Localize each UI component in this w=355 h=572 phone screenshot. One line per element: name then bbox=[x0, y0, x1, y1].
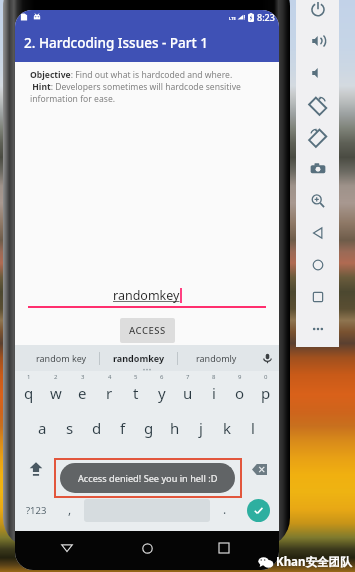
button[interactable]: 1 bbox=[15, 371, 42, 408]
staticText: f bbox=[120, 418, 126, 438]
button[interactable]: randomly bbox=[178, 345, 255, 371]
staticText: g bbox=[144, 418, 154, 438]
button[interactable]: Power bbox=[296, 0, 339, 24]
button[interactable]: 3 bbox=[69, 371, 96, 408]
staticText: t bbox=[133, 383, 139, 403]
staticText: 0 bbox=[264, 373, 268, 381]
button[interactable]: random key bbox=[23, 345, 99, 371]
button[interactable]: x bbox=[83, 448, 109, 490]
staticText: i bbox=[212, 383, 216, 403]
staticText: LTE bbox=[229, 16, 236, 21]
button[interactable]: Rotate left bbox=[296, 90, 339, 120]
button[interactable]: Enter bbox=[247, 499, 270, 522]
button[interactable]: v bbox=[135, 448, 161, 490]
button[interactable]: c bbox=[109, 448, 135, 490]
button[interactable]: Backspace bbox=[239, 448, 279, 490]
button[interactable]: Home bbox=[296, 250, 339, 280]
button[interactable]: a bbox=[29, 408, 56, 448]
staticText: j bbox=[199, 418, 203, 438]
staticText: Khan安全团队 bbox=[276, 554, 352, 570]
staticText: 3 bbox=[81, 373, 85, 381]
button[interactable]: randomkey bbox=[28, 284, 266, 306]
button[interactable]: randomkey bbox=[100, 345, 177, 371]
staticText: h bbox=[170, 418, 180, 438]
staticText: v bbox=[144, 459, 152, 479]
button[interactable]: Volume down bbox=[296, 58, 339, 88]
staticText: ACCESS bbox=[129, 324, 166, 337]
staticText: b bbox=[169, 459, 179, 479]
button[interactable]: Volume up bbox=[296, 26, 339, 56]
button[interactable]: ACCESS bbox=[120, 318, 175, 343]
staticText: Objective: Find out what is hardcoded an… bbox=[30, 69, 233, 81]
button[interactable]: f bbox=[110, 408, 136, 448]
button[interactable]: , bbox=[57, 490, 82, 531]
staticText: 8 bbox=[212, 373, 216, 381]
staticText: random key bbox=[36, 352, 87, 364]
button[interactable]: 9 bbox=[227, 371, 253, 408]
button[interactable]: d bbox=[83, 408, 110, 448]
button[interactable]: s bbox=[56, 408, 83, 448]
staticText: 2 bbox=[54, 373, 58, 381]
button[interactable]: More bbox=[296, 314, 339, 344]
button[interactable]: Back bbox=[296, 218, 339, 248]
button[interactable]: Home bbox=[132, 531, 162, 565]
staticText: 8:23 bbox=[257, 11, 275, 23]
staticText: e bbox=[78, 383, 87, 403]
button[interactable]: 7 bbox=[175, 371, 201, 408]
button[interactable]: 5 bbox=[123, 371, 149, 408]
staticText: o bbox=[235, 383, 245, 403]
staticText: a bbox=[38, 418, 47, 438]
button[interactable]: Overview bbox=[296, 282, 339, 312]
staticText: 5 bbox=[134, 373, 138, 381]
button[interactable]: m bbox=[213, 448, 239, 490]
staticText: 7 bbox=[186, 373, 190, 381]
button[interactable]: 6 bbox=[149, 371, 175, 408]
button[interactable]: 2 bbox=[42, 371, 69, 408]
button[interactable]: ?123 bbox=[15, 490, 57, 531]
staticText: Access denied! See you in hell :D bbox=[78, 472, 218, 485]
button[interactable]: g bbox=[136, 408, 162, 448]
staticText: l bbox=[251, 418, 255, 438]
button[interactable]: Recents bbox=[209, 531, 239, 565]
button[interactable]: Zoom bbox=[296, 186, 339, 216]
staticText: r bbox=[106, 383, 113, 403]
button[interactable]: l bbox=[240, 408, 266, 448]
button[interactable]: Back bbox=[52, 531, 82, 565]
staticText: , bbox=[68, 501, 72, 517]
staticText: randomly bbox=[196, 352, 237, 364]
staticText: p bbox=[261, 383, 271, 403]
button[interactable]: h bbox=[162, 408, 188, 448]
button[interactable]: Screenshot bbox=[296, 154, 339, 184]
button[interactable]: k bbox=[214, 408, 240, 448]
staticText: q bbox=[24, 383, 34, 403]
button[interactable]: 8 bbox=[201, 371, 227, 408]
staticText: d bbox=[92, 418, 102, 438]
button[interactable]: j bbox=[188, 408, 214, 448]
staticText: c bbox=[118, 459, 126, 479]
staticText: k bbox=[223, 418, 232, 438]
staticText: randomkey bbox=[113, 352, 165, 364]
staticText: y bbox=[158, 383, 166, 403]
staticText: 1 bbox=[27, 373, 31, 381]
staticText: randomkey bbox=[113, 287, 180, 304]
staticText: 2. Hardcoding Issues - Part 1 bbox=[24, 34, 208, 52]
staticText: 6 bbox=[160, 373, 164, 381]
button[interactable]: . bbox=[212, 490, 237, 531]
staticText: . bbox=[223, 501, 227, 517]
button[interactable]: Rotate right bbox=[296, 122, 339, 152]
button[interactable]: z bbox=[56, 448, 83, 490]
staticText: x bbox=[92, 459, 100, 479]
button[interactable]: Shift bbox=[15, 448, 56, 490]
staticText: s bbox=[66, 418, 74, 438]
staticText: Hint: Developers sometimes will hardcode… bbox=[30, 81, 266, 104]
button[interactable]: n bbox=[187, 448, 213, 490]
button[interactable]: Voice input bbox=[255, 345, 279, 371]
button[interactable]: 0 bbox=[253, 371, 279, 408]
button[interactable]: 4 bbox=[96, 371, 123, 408]
button[interactable]: b bbox=[161, 448, 187, 490]
staticText: w bbox=[50, 383, 62, 403]
staticText: ?123 bbox=[26, 504, 47, 517]
staticText: 4 bbox=[108, 373, 112, 381]
staticText: 9 bbox=[238, 373, 242, 381]
